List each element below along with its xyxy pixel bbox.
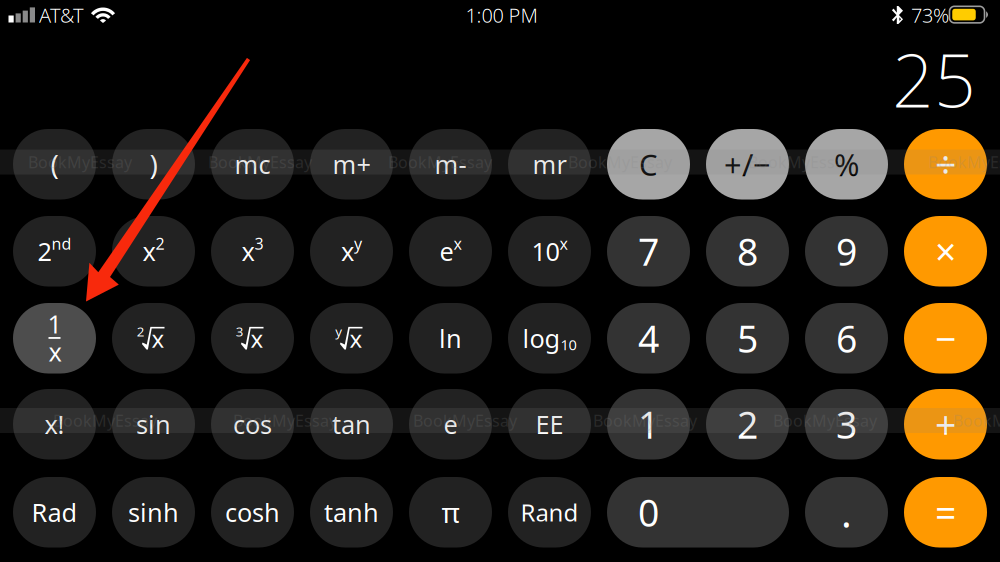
staticText: ) xyxy=(149,146,157,183)
button[interactable]: 8 xyxy=(706,216,789,286)
staticText: e xyxy=(439,234,453,268)
staticText: BookMyEssay xyxy=(53,410,157,431)
staticText: y xyxy=(335,322,342,340)
staticText: π xyxy=(441,494,459,531)
staticText: y xyxy=(354,233,362,254)
staticText: EE xyxy=(535,407,563,441)
button[interactable]: tanh xyxy=(310,477,393,547)
staticText: tan xyxy=(332,407,371,441)
staticText: x xyxy=(349,322,362,354)
staticText: 3 xyxy=(836,399,857,449)
staticText: x xyxy=(151,322,164,354)
staticText: BookMyEssay xyxy=(413,410,517,431)
button[interactable]: 1 xyxy=(607,389,690,459)
button[interactable]: xy xyxy=(310,216,393,286)
staticText: nd xyxy=(51,233,71,254)
button[interactable]: 4 xyxy=(607,303,690,373)
button[interactable]: x2 xyxy=(112,216,195,286)
staticText: − xyxy=(935,313,956,363)
staticText: BookMyEssay xyxy=(208,151,312,173)
staticText: BookMyEssay xyxy=(928,151,1000,173)
button[interactable]: Rad xyxy=(13,477,96,547)
button[interactable]: C xyxy=(607,129,690,199)
button[interactable]: % xyxy=(805,129,888,199)
button[interactable]: ) xyxy=(112,129,195,199)
button[interactable]: y root x xyxy=(310,303,393,373)
button[interactable]: ( xyxy=(13,129,96,199)
staticText: cos xyxy=(233,407,272,441)
staticText: BookMyEssay xyxy=(748,151,852,173)
button[interactable]: divide xyxy=(904,129,987,199)
staticText: = xyxy=(935,487,956,537)
staticText: BookMyEssay xyxy=(233,410,337,431)
button[interactable]: 9 xyxy=(805,216,888,286)
staticText: +/− xyxy=(724,144,771,185)
button[interactable]: mc xyxy=(211,129,294,199)
button[interactable]: 3 xyxy=(805,389,888,459)
button[interactable]: one over x xyxy=(13,303,96,373)
button[interactable]: cos xyxy=(211,389,294,459)
button[interactable]: 6 xyxy=(805,303,888,373)
staticText: 25 xyxy=(892,30,976,128)
staticText: Rand xyxy=(520,496,578,528)
staticText: BookMyEssay xyxy=(593,410,697,431)
button[interactable]: minus xyxy=(904,303,987,373)
button[interactable]: equals xyxy=(904,477,987,547)
button[interactable]: multiply xyxy=(904,216,987,286)
button[interactable]: EE xyxy=(508,389,591,459)
staticText: 3 xyxy=(254,233,263,254)
staticText: mr xyxy=(532,147,566,181)
staticText: x xyxy=(453,233,461,254)
button[interactable]: 2nd xyxy=(13,216,96,286)
button[interactable]: e xyxy=(409,389,492,459)
staticText: m+ xyxy=(332,147,370,181)
button[interactable]: ex xyxy=(409,216,492,286)
button[interactable]: m+ xyxy=(310,129,393,199)
staticText: x xyxy=(559,233,567,254)
staticText: sin xyxy=(136,407,171,441)
staticText: log xyxy=(522,321,560,355)
staticText: BookMyEssay xyxy=(28,151,132,173)
button[interactable]: tan xyxy=(310,389,393,459)
button[interactable]: decimal point xyxy=(805,477,888,547)
staticText: + xyxy=(935,399,956,449)
button[interactable]: factorial xyxy=(13,389,96,459)
button[interactable]: x3 xyxy=(211,216,294,286)
staticText: 1:00 PM xyxy=(465,2,537,28)
staticText: x xyxy=(48,335,61,368)
staticText: 0 xyxy=(638,487,659,537)
staticText: ln xyxy=(439,321,462,355)
button[interactable]: cosh xyxy=(211,477,294,547)
staticText: m- xyxy=(434,147,466,181)
button[interactable]: mr xyxy=(508,129,591,199)
button[interactable]: 2 xyxy=(706,389,789,459)
button[interactable]: 0 xyxy=(607,477,789,547)
staticText: 2 xyxy=(737,399,758,449)
staticText: 3 xyxy=(236,322,244,340)
button[interactable]: Rand xyxy=(508,477,591,547)
button[interactable]: sinh xyxy=(112,477,195,547)
staticText: mc xyxy=(234,147,270,181)
button[interactable]: pi xyxy=(409,477,492,547)
button[interactable]: 2 root x xyxy=(112,303,195,373)
staticText: 5 xyxy=(737,313,758,363)
staticText: ÷ xyxy=(935,139,956,189)
staticText: 4 xyxy=(638,313,659,363)
button[interactable]: log10 xyxy=(508,303,591,373)
button[interactable]: m- xyxy=(409,129,492,199)
button[interactable]: 10x xyxy=(508,216,591,286)
staticText: % xyxy=(834,144,859,185)
staticText: 1 xyxy=(638,399,659,449)
button[interactable]: 3 root x xyxy=(211,303,294,373)
button[interactable]: sin xyxy=(112,389,195,459)
button[interactable]: 7 xyxy=(607,216,690,286)
staticText: AT&T xyxy=(39,2,84,28)
button[interactable]: plus xyxy=(904,389,987,459)
staticText: 9 xyxy=(836,226,857,276)
staticText: 2 xyxy=(155,233,164,254)
staticText: x! xyxy=(44,407,64,441)
button[interactable]: plus minus xyxy=(706,129,789,199)
button[interactable]: 5 xyxy=(706,303,789,373)
staticText: ( xyxy=(50,146,58,183)
button[interactable]: ln xyxy=(409,303,492,373)
